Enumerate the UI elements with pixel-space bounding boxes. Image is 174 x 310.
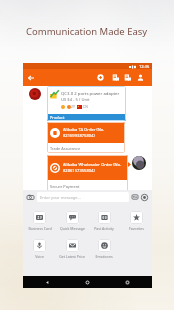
staticText: Emoticons <box>95 254 113 259</box>
button[interactable]: QC3.0 2 ports power adapter <box>47 86 126 121</box>
staticText: Alibaba TA Order (No. <box>63 127 105 133</box>
button[interactable]: Quick Message <box>56 211 88 231</box>
staticText: Voice <box>35 254 44 259</box>
staticText: 8286157355804) <box>63 168 95 174</box>
staticText: QC3.0 2 ports power adapter <box>61 90 120 96</box>
button[interactable]: Favorites <box>120 211 152 231</box>
button[interactable]: Add contact <box>95 72 106 83</box>
button[interactable]: Alibaba Wholesaler Order (No. <box>47 155 128 192</box>
button[interactable]: Camera <box>26 193 35 202</box>
button[interactable]: Enter your message... <box>37 192 129 202</box>
button[interactable]: Translate <box>131 193 139 201</box>
staticText: 12:36 <box>139 64 150 69</box>
staticText: Business Card <box>28 226 52 231</box>
staticText: Secure Payment <box>50 184 80 189</box>
button[interactable]: Past Activity <box>88 211 120 231</box>
staticText: Communication Made Easy <box>26 25 148 38</box>
staticText: US $4 - 5 / Unit <box>61 97 90 103</box>
staticText: Product <box>50 115 65 120</box>
button[interactable]: Voice <box>23 239 56 259</box>
staticText: CN <box>83 104 88 109</box>
button[interactable]: Back <box>43 278 52 287</box>
staticText: 8216993875804) <box>63 133 95 139</box>
staticText: 2Y <box>71 104 75 109</box>
staticText: Get Latest Price <box>59 254 85 259</box>
staticText: Enter your message... <box>40 195 81 200</box>
button[interactable]: Quotations <box>110 72 121 83</box>
staticText: Alibaba Wholesaler Order (No. <box>63 162 122 168</box>
button[interactable]: Home <box>83 278 92 287</box>
button[interactable]: Recent apps <box>123 278 132 287</box>
staticText: Quick Message <box>60 226 85 231</box>
button[interactable]: Orders <box>122 72 133 83</box>
staticText: Favorites <box>129 226 144 231</box>
button[interactable]: Business Card <box>23 211 56 231</box>
button[interactable]: Contact details <box>135 72 146 83</box>
staticText: Trade Assurance <box>50 146 81 151</box>
button[interactable]: Alibaba TA Order (No. <box>47 122 125 153</box>
button[interactable]: Get Latest Price <box>56 239 88 259</box>
staticText: Past Activity <box>94 226 114 231</box>
button[interactable]: More options <box>140 193 149 202</box>
button[interactable]: Back <box>25 72 36 83</box>
button[interactable]: Emoticons <box>88 239 120 259</box>
